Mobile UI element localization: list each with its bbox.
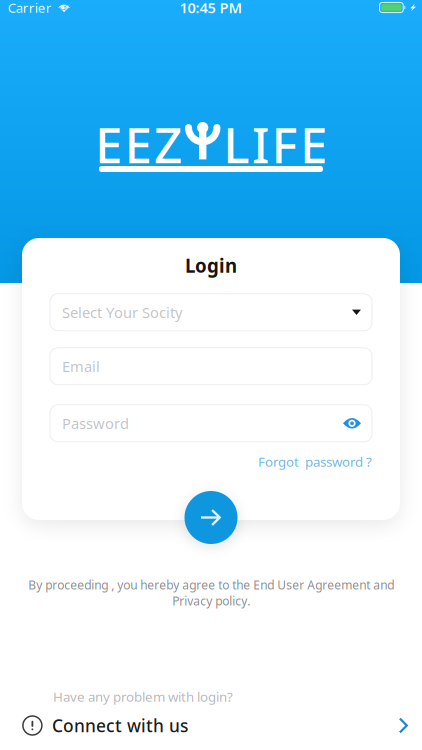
staticText: E (95, 111, 122, 177)
staticText: Forgot password ? (258, 453, 372, 470)
button[interactable]: Email (50, 348, 372, 385)
button[interactable]: Forgot password ? (258, 453, 372, 470)
staticText: Password (62, 414, 129, 433)
staticText: Carrier (8, 0, 52, 16)
staticText: E (300, 111, 327, 177)
staticText: 10:45 PM (179, 0, 242, 17)
staticText: Connect with us (52, 714, 188, 737)
staticText: Login (185, 253, 237, 278)
staticText: Have any problem with login? (53, 688, 233, 705)
staticText: I (252, 111, 269, 177)
staticText: L (223, 111, 249, 177)
staticText: By proceeding , you hereby agree to the … (28, 577, 394, 609)
button[interactable]: Password (50, 405, 372, 442)
button[interactable]: Connect with us (0, 705, 422, 746)
button[interactable]: Select Your Socity (50, 294, 372, 331)
staticText: Email (62, 357, 100, 376)
staticText: Select Your Socity (62, 303, 182, 322)
staticText: F (271, 111, 297, 177)
staticText: Z (154, 111, 182, 177)
staticText: E (124, 111, 151, 177)
button[interactable]: Continue (184, 491, 237, 544)
